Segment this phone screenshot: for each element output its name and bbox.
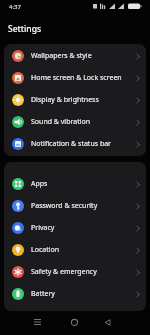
staticText: Safety & emergency (31, 267, 97, 277)
staticText: Notification & status bar (31, 139, 112, 149)
button[interactable]: Battery (4, 283, 146, 305)
button[interactable]: Home screen & Lock screen (4, 67, 146, 89)
staticText: Privacy (31, 223, 55, 233)
staticText: Battery (31, 289, 55, 299)
staticText: Home screen & Lock screen (31, 73, 122, 83)
button[interactable]: Sound & vibration (4, 111, 146, 133)
staticText: Sound & vibration (31, 117, 91, 127)
button[interactable] (97, 312, 117, 332)
button[interactable]: Privacy (4, 217, 146, 239)
button[interactable] (27, 312, 47, 332)
button[interactable]: Apps (4, 173, 146, 195)
button[interactable]: Notification & status bar (4, 133, 146, 155)
button[interactable]: Wallpapers & style (4, 45, 146, 67)
staticText: Display & brightness (31, 95, 99, 105)
staticText: Location (31, 245, 60, 255)
staticText: Settings (8, 23, 42, 35)
button[interactable]: Location (4, 239, 146, 261)
staticText: Password & security (31, 201, 98, 211)
button[interactable]: Display & brightness (4, 89, 146, 111)
staticText: Wallpapers & style (31, 51, 92, 61)
button[interactable]: Password & security (4, 195, 146, 217)
button[interactable]: Safety & emergency (4, 261, 146, 283)
staticText: Apps (31, 179, 48, 189)
staticText: 4:37 (9, 3, 21, 11)
button[interactable] (64, 312, 84, 332)
